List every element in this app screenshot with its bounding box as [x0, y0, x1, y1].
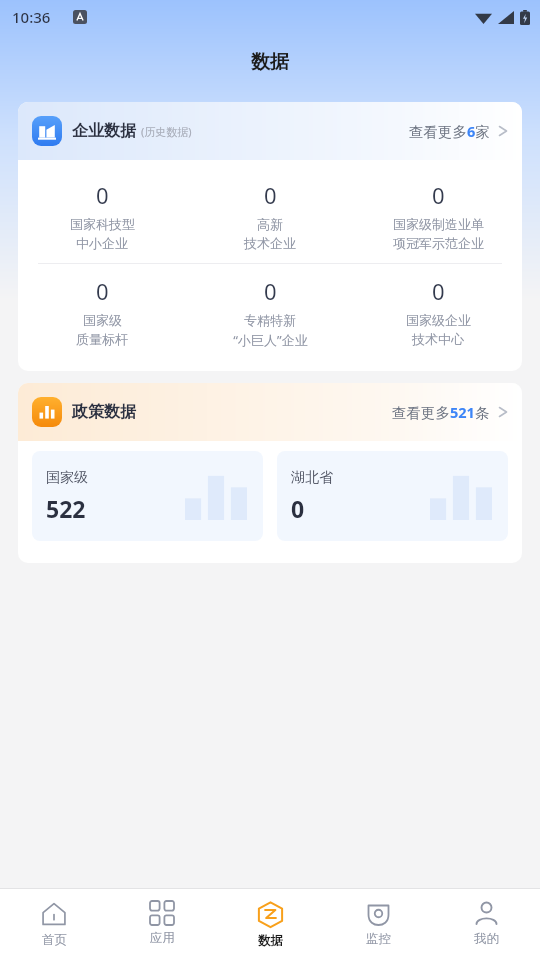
button[interactable]: 国家级 — [32, 451, 263, 541]
staticText: 项冠军示范企业 — [393, 235, 484, 251]
staticText: 0 — [291, 493, 305, 524]
staticText: 数据 — [258, 933, 283, 949]
other: 监控 — [366, 901, 391, 926]
staticText: 专精特新 — [244, 312, 296, 328]
button[interactable]: 首页 — [0, 889, 108, 960]
staticText: 国家级制造业单 — [393, 216, 484, 232]
staticText: 首页 — [42, 932, 67, 948]
staticText: 10:36 — [12, 7, 51, 27]
button[interactable]: 0 — [18, 272, 186, 351]
button[interactable]: 0 — [354, 272, 522, 351]
staticText: 中小企业 — [76, 235, 128, 251]
staticText: 0 — [96, 180, 109, 210]
staticText: 国家级企业 — [406, 312, 471, 328]
button[interactable]: 政策数据 — [18, 383, 522, 441]
staticText: 我的 — [474, 931, 499, 947]
staticText: 技术企业 — [244, 235, 296, 251]
other: 首页 — [41, 901, 67, 927]
button[interactable]: 应用 — [108, 889, 216, 960]
staticText: 0 — [432, 180, 445, 210]
button[interactable]: 监控 — [324, 889, 432, 960]
button[interactable]: 企业数据 — [18, 102, 522, 160]
button[interactable]: 0 — [186, 272, 354, 353]
staticText: 政策数据 — [72, 402, 136, 422]
staticText: 国家级 — [83, 312, 122, 328]
staticText: 0 — [264, 180, 277, 210]
other: 应用 — [150, 901, 174, 925]
staticText: 0 — [96, 276, 109, 306]
staticText: “小巨人”企业 — [233, 331, 308, 349]
staticText: 522 — [46, 493, 86, 524]
staticText: 应用 — [150, 930, 175, 946]
staticText: 质量标杆 — [76, 331, 128, 347]
staticText: 企业数据 — [72, 121, 136, 141]
staticText: 0 — [264, 276, 277, 306]
staticText: 高新 — [257, 216, 283, 232]
staticText: 国家科技型 — [70, 216, 135, 232]
staticText: 0 — [432, 276, 445, 306]
button[interactable]: 0 — [18, 176, 186, 255]
staticText: 数据 — [251, 50, 289, 74]
staticText: (历史数据) — [141, 124, 192, 139]
button[interactable]: 0 — [354, 176, 522, 255]
other: 数据 — [257, 901, 284, 928]
button[interactable]: 数据 — [216, 889, 324, 960]
staticText: 查看更多6家 — [409, 121, 490, 141]
button[interactable]: 0 — [186, 176, 354, 255]
button[interactable]: 我的 — [432, 889, 540, 960]
button[interactable]: 湖北省 — [277, 451, 508, 541]
staticText: 监控 — [366, 931, 391, 947]
staticText: 技术中心 — [412, 331, 464, 347]
staticText: 查看更多521条 — [392, 402, 490, 422]
staticText: 国家级 — [46, 469, 88, 487]
staticText: 湖北省 — [291, 469, 333, 487]
other: 我的 — [474, 901, 499, 926]
